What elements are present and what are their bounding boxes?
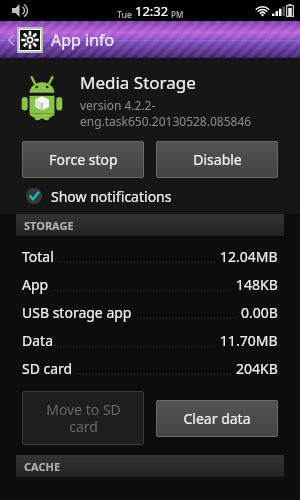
button[interactable]: Show notifications: [26, 178, 300, 214]
staticText: Show notifications: [51, 187, 172, 206]
staticText: Move to SD card: [46, 400, 121, 436]
button[interactable]: Back: [0, 21, 300, 59]
button[interactable]: USB storage app: [22, 298, 278, 326]
button[interactable]: Force stop: [22, 141, 144, 178]
staticText: Disable: [193, 150, 242, 169]
staticText: 12:32: [135, 2, 169, 20]
staticText: Force stop: [49, 150, 118, 169]
button[interactable]: Clear data: [156, 400, 278, 437]
staticText: 0.00B: [241, 303, 278, 322]
button[interactable]: Data: [22, 326, 278, 354]
button[interactable]: Move to SD card: [22, 391, 144, 445]
button[interactable]: App: [22, 270, 278, 298]
staticText: App: [22, 275, 49, 294]
staticText: STORAGE: [24, 218, 74, 233]
staticText: Data: [22, 331, 53, 350]
staticText: version 4.2.2-: [80, 97, 156, 113]
staticText: App info: [51, 29, 115, 51]
button[interactable]: Back: [5, 21, 15, 59]
staticText: SD card: [22, 359, 73, 378]
button[interactable]: Disable: [156, 141, 278, 178]
staticText: eng.task650.20130528.085846: [80, 113, 252, 129]
staticText: 204KB: [236, 359, 278, 378]
staticText: PM: [169, 9, 184, 20]
staticText: 11.70MB: [220, 331, 278, 350]
staticText: Media Storage: [80, 71, 196, 94]
staticText: Total: [22, 247, 54, 266]
button[interactable]: Total: [22, 242, 278, 270]
staticText: Tue: [117, 8, 135, 20]
staticText: CACHE: [24, 459, 61, 474]
staticText: 148KB: [236, 275, 278, 294]
staticText: USB storage app: [22, 303, 132, 322]
staticText: 12.04MB: [220, 247, 278, 266]
staticText: Clear data: [183, 409, 251, 428]
button[interactable]: SD card: [22, 354, 278, 382]
